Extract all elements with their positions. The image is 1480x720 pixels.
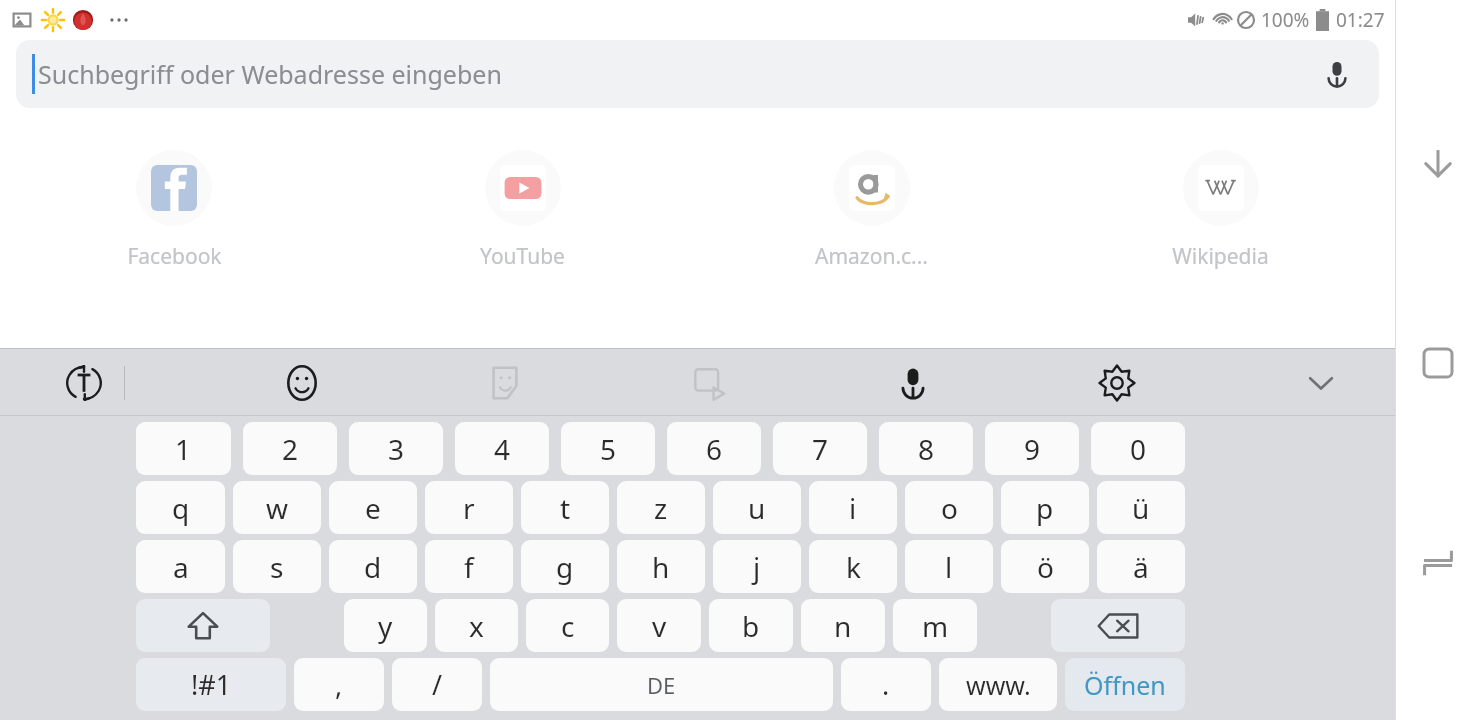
button[interactable]: Wikipedia [1046,150,1395,271]
staticText: 6 [706,430,723,468]
button[interactable]: y [344,599,427,652]
button[interactable]: k [809,540,897,593]
button[interactable]: !#1 [136,658,286,711]
other: Shift [186,609,220,643]
button[interactable]: Emoji [276,357,328,409]
staticText: ö [1037,548,1054,586]
staticText: www. [966,668,1031,702]
button[interactable]: w [233,481,321,534]
staticText: a [173,548,189,586]
button[interactable]: 6 [667,422,761,475]
button[interactable]: h [617,540,705,593]
staticText: DE [647,670,676,700]
button[interactable]: . [841,658,931,711]
staticText: p [1036,489,1054,527]
button[interactable]: Shift [136,599,270,652]
button[interactable]: g [521,540,609,593]
staticText: g [556,548,574,586]
button[interactable]: n [801,599,885,652]
staticText: ü [1132,489,1150,527]
staticText: e [365,489,381,527]
staticText: i [849,489,857,527]
button[interactable]: / [392,658,482,711]
button[interactable]: u [713,481,801,534]
staticText: n [834,607,852,645]
button[interactable]: m [893,599,977,652]
staticText: j [753,548,761,586]
button[interactable]: Hide keyboard [1295,357,1347,409]
button[interactable]: 5 [561,422,655,475]
button[interactable]: 4 [455,422,549,475]
staticText: 01:27 [1336,7,1385,33]
button[interactable]: 3 [349,422,443,475]
button[interactable]: Öffnen [1065,658,1185,711]
staticText: t [560,489,571,527]
button[interactable]: p [1001,481,1089,534]
staticText: f [464,548,474,586]
button[interactable]: o [905,481,993,534]
staticText: v [652,607,667,645]
button[interactable]: Amazon.c... [697,150,1046,271]
button[interactable]: Back [1410,135,1466,191]
button[interactable]: ä [1097,540,1185,593]
button[interactable]: GIF [683,357,735,409]
button[interactable]: www. [939,658,1057,711]
staticText: u [748,489,766,527]
staticText: d [364,548,382,586]
button[interactable]: f [425,540,513,593]
button[interactable]: 7 [773,422,867,475]
button[interactable]: j [713,540,801,593]
button[interactable]: s [233,540,321,593]
button[interactable]: 2 [243,422,337,475]
button[interactable]: c [526,599,609,652]
button[interactable]: Settings [1091,357,1143,409]
staticText: 8 [918,430,935,468]
staticText: 100% [1261,7,1310,33]
button[interactable]: , [294,658,384,711]
button[interactable]: Recents [1410,535,1466,591]
button[interactable]: a [136,540,225,593]
button[interactable]: Voice search [1315,52,1359,96]
staticText: z [654,489,668,527]
button[interactable]: v [617,599,701,652]
button[interactable]: DE [490,658,833,711]
button[interactable]: ü [1097,481,1185,534]
staticText: 3 [388,430,405,468]
button[interactable]: d [329,540,417,593]
button[interactable]: 0 [1091,422,1185,475]
staticText: / [432,666,443,703]
staticText: s [270,548,284,586]
button[interactable]: Translate [58,357,110,409]
button[interactable]: q [136,481,225,534]
button[interactable]: z [617,481,705,534]
button[interactable]: l [905,540,993,593]
staticText: Suchbegriff oder Webadresse eingeben [38,57,502,91]
button[interactable]: x [435,599,518,652]
staticText: y [378,607,393,645]
staticText: l [945,548,953,586]
staticText: q [172,489,190,527]
button[interactable]: YouTube [348,150,697,271]
button[interactable]: Suchbegriff oder Webadresse eingeben [16,40,1379,108]
button[interactable]: t [521,481,609,534]
button[interactable]: r [425,481,513,534]
staticText: . [882,666,890,703]
button[interactable]: Facebook [0,150,348,271]
button[interactable]: i [809,481,897,534]
button[interactable]: e [329,481,417,534]
button[interactable]: b [709,599,793,652]
button[interactable]: Backspace [1051,599,1185,652]
button[interactable]: Voice input [887,357,939,409]
staticText: o [941,489,958,527]
button[interactable]: 1 [136,422,231,475]
button[interactable]: Stickers [479,357,531,409]
staticText: ä [1133,548,1149,586]
button[interactable]: 9 [985,422,1079,475]
staticText: Amazon.c... [815,242,928,271]
button[interactable]: Home [1410,335,1466,391]
staticText: 7 [812,430,829,468]
staticText: Facebook [127,242,222,271]
button[interactable]: 8 [879,422,973,475]
button[interactable]: ö [1001,540,1089,593]
staticText: 1 [175,430,192,468]
